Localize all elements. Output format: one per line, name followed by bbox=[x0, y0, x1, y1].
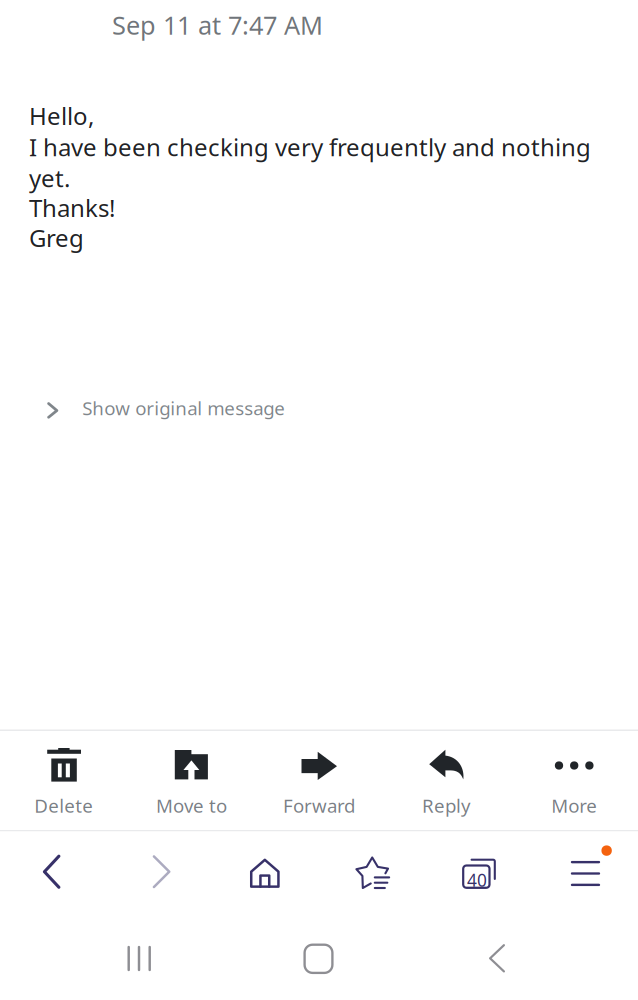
button[interactable]: Recent apps bbox=[99, 920, 175, 996]
button[interactable]: Home bbox=[280, 921, 356, 997]
staticText: yet. bbox=[29, 162, 70, 194]
staticText: More bbox=[551, 793, 597, 818]
staticText: Thanks! bbox=[29, 192, 115, 224]
button[interactable]: More bbox=[510, 731, 638, 830]
staticText: I have been checking very frequently and… bbox=[29, 131, 591, 163]
button[interactable]: Show original message bbox=[0, 392, 638, 429]
button[interactable]: Delete bbox=[0, 731, 128, 830]
staticText: Sep 11 at 7:47 AM bbox=[112, 8, 323, 42]
staticText: Hello, bbox=[29, 100, 94, 131]
button[interactable]: Move to bbox=[128, 731, 255, 830]
staticText: Forward bbox=[283, 793, 355, 818]
staticText: Reply bbox=[422, 793, 471, 818]
staticText: Delete bbox=[34, 793, 93, 818]
button[interactable]: Bookmarks bbox=[319, 831, 425, 905]
button[interactable]: Back bbox=[467, 920, 543, 996]
button[interactable]: Tabs, 40 open bbox=[425, 831, 532, 905]
button[interactable]: Home bbox=[213, 831, 319, 905]
button[interactable]: Menu bbox=[532, 831, 638, 905]
button[interactable]: Forward bbox=[106, 831, 213, 905]
staticText: 40 bbox=[467, 868, 487, 891]
button[interactable]: Forward bbox=[255, 731, 383, 830]
button[interactable]: Back bbox=[0, 831, 106, 905]
button[interactable]: Reply bbox=[383, 731, 510, 830]
staticText: Move to bbox=[156, 793, 227, 818]
staticText: Show original message bbox=[82, 395, 285, 420]
staticText: Greg bbox=[29, 222, 84, 253]
